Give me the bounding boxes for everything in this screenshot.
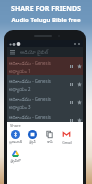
staticText: Share	[10, 123, 21, 128]
button[interactable]: Favourite	[75, 116, 83, 124]
staticText: ఆడియో బైబిల్	[20, 49, 49, 57]
staticText: అధ్యాయం 2	[9, 86, 31, 93]
button[interactable]: ఆదికాండము - Genesis	[7, 57, 83, 75]
button[interactable]: Play	[68, 117, 75, 124]
button[interactable]: Play	[68, 63, 75, 70]
button[interactable]: Play	[68, 99, 75, 106]
staticText: Audio Telugu Bible free	[11, 16, 81, 24]
button[interactable]: బ్లూటూత్	[7, 130, 24, 145]
staticText: అధ్యాయం 3	[9, 104, 31, 111]
button[interactable]: Gmail	[58, 130, 75, 145]
button[interactable]: Play	[68, 81, 75, 88]
button[interactable]: Favourite	[75, 62, 83, 70]
staticText: ఆదికాండము - Genesis	[9, 60, 51, 67]
button[interactable]: ఆదికాండము - Genesis	[7, 93, 83, 111]
staticText: ఆదికాండము - Genesis	[9, 114, 51, 121]
staticText: డ్రైవ్‌లో	[10, 159, 21, 164]
button[interactable]: డ్రైవ్	[24, 130, 41, 145]
button[interactable]: ఆదికాండము - Genesis	[7, 75, 83, 93]
staticText: బ్లూటూత్	[9, 140, 22, 145]
staticText: అధ్యాయం 4	[9, 122, 31, 129]
staticText: ఆదికాండము - Genesis	[9, 78, 51, 85]
staticText: డ్రైవ్	[29, 140, 36, 145]
staticText: కాపీ	[47, 140, 53, 145]
staticText: అధ్యాయం 1	[9, 68, 31, 75]
staticText: ఆదికాండము - Genesis	[9, 96, 51, 103]
button[interactable]: Menu	[9, 49, 16, 56]
staticText: SHARE FOR FRIENDS	[11, 4, 81, 14]
button[interactable]: Favourite	[75, 80, 83, 88]
button[interactable]: ఆదికాండము - Genesis	[7, 111, 83, 129]
button[interactable]: Favourite	[75, 98, 83, 106]
button[interactable]: డ్రైవ్‌లో	[7, 149, 24, 164]
staticText: Gmail	[62, 140, 72, 145]
button[interactable]: కాపీ	[41, 130, 58, 145]
